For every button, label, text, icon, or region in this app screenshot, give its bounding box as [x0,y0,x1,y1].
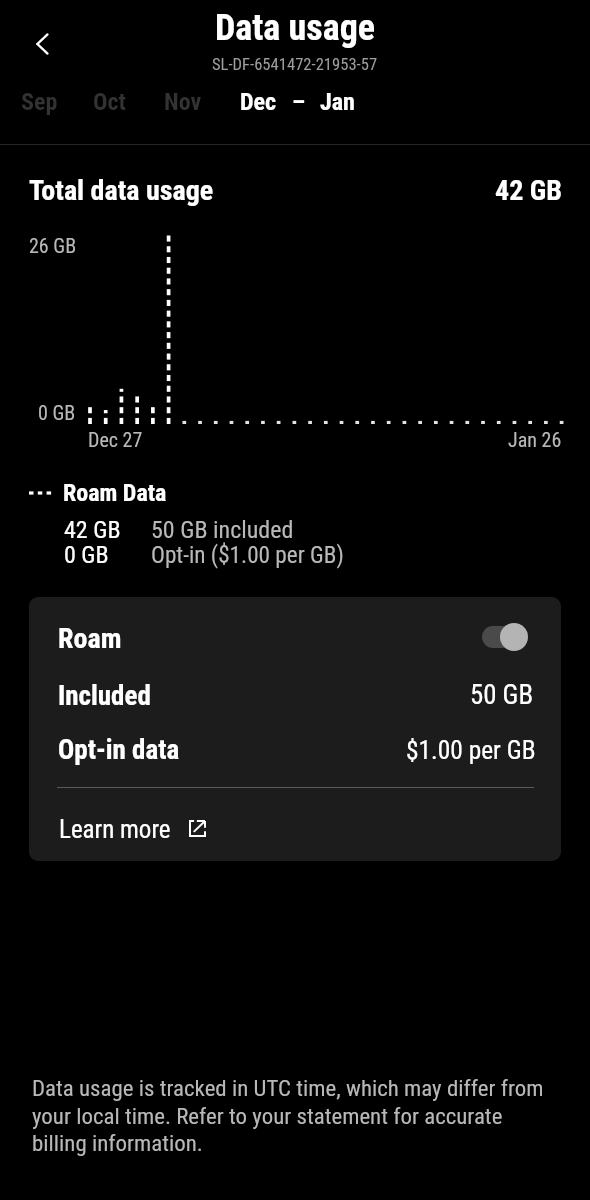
staticText: Dec 27 [88,428,143,451]
button[interactable]: Dec [228,81,367,123]
staticText: Included [58,680,151,712]
staticText: Opt-in ($1.00 per GB) [151,541,344,568]
staticText: Nov [164,88,202,116]
staticText: Dec [240,88,277,116]
staticText: Jan 26 [508,428,562,451]
staticText: – [292,88,306,116]
staticText: Sep [21,88,58,116]
staticText: Roam Data [63,479,167,507]
staticText: 0 GB [64,541,109,569]
staticText: Opt-in data [58,734,180,766]
staticText: 50 GB included [151,516,294,544]
staticText: Data usage [215,7,376,49]
staticText: Learn more [59,815,171,844]
button[interactable]: Roam toggle [477,617,533,657]
button[interactable]: Nov [152,81,214,123]
staticText: Total data usage [29,174,214,207]
staticText: Jan [320,88,355,116]
button[interactable]: Back [17,18,69,70]
button[interactable]: Sep [9,81,70,123]
staticText: $1.00 per GB [406,735,536,765]
staticText: 50 GB [470,679,534,710]
staticText: 42 GB [64,516,121,544]
staticText: SL-DF-6541472-21953-57 [212,55,378,74]
button[interactable]: Learn more [56,811,209,848]
staticText: Data usage is tracked in UTC time, which… [32,1075,562,1156]
staticText: 42 GB [495,174,562,207]
staticText: Roam [58,622,122,655]
staticText: 26 GB [29,234,77,257]
staticText: 0 GB [38,401,76,424]
staticText: Oct [93,88,126,116]
button[interactable]: Oct [81,81,138,123]
